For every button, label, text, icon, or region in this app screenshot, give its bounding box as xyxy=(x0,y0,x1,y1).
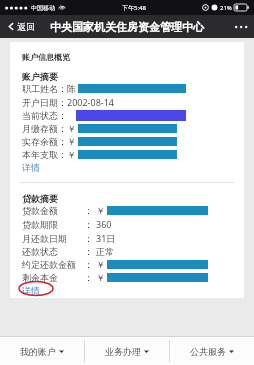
staticText: 约定还款金额 xyxy=(22,259,76,270)
staticText: 月缴存额：￥ xyxy=(22,123,76,134)
staticText: 本年支取：￥ xyxy=(22,149,76,160)
staticText: 公共服务 xyxy=(190,346,226,357)
button[interactable]: 详情 xyxy=(22,284,40,297)
staticText: 业务办理 xyxy=(105,346,141,357)
staticText: ： xyxy=(84,219,93,230)
button[interactable]: 公共服务 xyxy=(170,337,254,365)
button[interactable]: 返回 xyxy=(5,19,37,34)
staticText: ： xyxy=(84,272,93,283)
staticText: 账户信息概览 xyxy=(22,52,70,62)
button[interactable]: More options xyxy=(232,22,250,32)
staticText: 详情 xyxy=(22,162,40,173)
staticText: 下午5:48 xyxy=(122,4,146,12)
staticText: 贷款金额 xyxy=(22,205,58,216)
staticText: ￥ xyxy=(96,205,105,216)
staticText: 月还款日期 xyxy=(22,233,67,244)
staticText: 中国移动 xyxy=(31,4,55,12)
staticText: 我的账户 xyxy=(20,346,56,357)
staticText: ￥ xyxy=(96,259,105,270)
staticText: 360 xyxy=(96,218,112,230)
staticText: 中央国家机关住房资金管理中心 xyxy=(50,20,204,34)
staticText: 账户摘要 xyxy=(22,71,58,82)
staticText: 还款状态 xyxy=(22,246,58,257)
staticText: 贷款摘要 xyxy=(22,193,58,204)
staticText: 详情 xyxy=(22,285,40,296)
staticText: 31日 xyxy=(96,232,116,244)
staticText: ￥ xyxy=(96,272,105,283)
button[interactable]: 业务办理 xyxy=(85,337,169,365)
staticText: ： xyxy=(84,246,93,257)
staticText: 21% xyxy=(220,4,232,12)
staticText: 贷款期限 xyxy=(22,219,58,230)
button[interactable]: 我的账户 xyxy=(0,337,84,365)
staticText: ： xyxy=(84,259,93,270)
staticText: 当前状态： xyxy=(22,110,67,121)
staticText: 职工姓名：陈 xyxy=(22,83,76,94)
staticText: 正常 xyxy=(96,246,114,257)
button[interactable]: 详情 xyxy=(22,161,40,174)
staticText: 开户日期：2002-08-14 xyxy=(22,96,114,108)
staticText: 实存余额：￥ xyxy=(22,136,76,147)
staticText: ： xyxy=(84,205,93,216)
staticText: 剩余本金 xyxy=(22,272,58,283)
staticText: 返回 xyxy=(17,21,35,32)
staticText: ： xyxy=(84,233,93,244)
